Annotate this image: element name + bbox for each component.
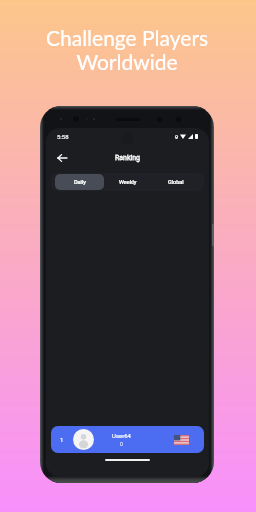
button[interactable]: Global [152, 174, 200, 190]
button[interactable]: Back [53, 149, 71, 167]
staticText: User64 [112, 432, 131, 439]
button[interactable]: 1 [51, 426, 204, 453]
staticText: 0 [120, 441, 123, 447]
staticText: Daily [74, 179, 86, 185]
staticText: 1 [60, 436, 64, 443]
staticText: Weekly [119, 179, 137, 185]
staticText: 5:58 [57, 133, 69, 140]
staticText: Ranking [115, 154, 141, 162]
button[interactable]: Weekly [104, 174, 152, 190]
staticText: Global [168, 179, 184, 185]
button[interactable]: Daily [55, 174, 104, 190]
staticText: Challenge Players Worldwide [0, 25, 255, 74]
